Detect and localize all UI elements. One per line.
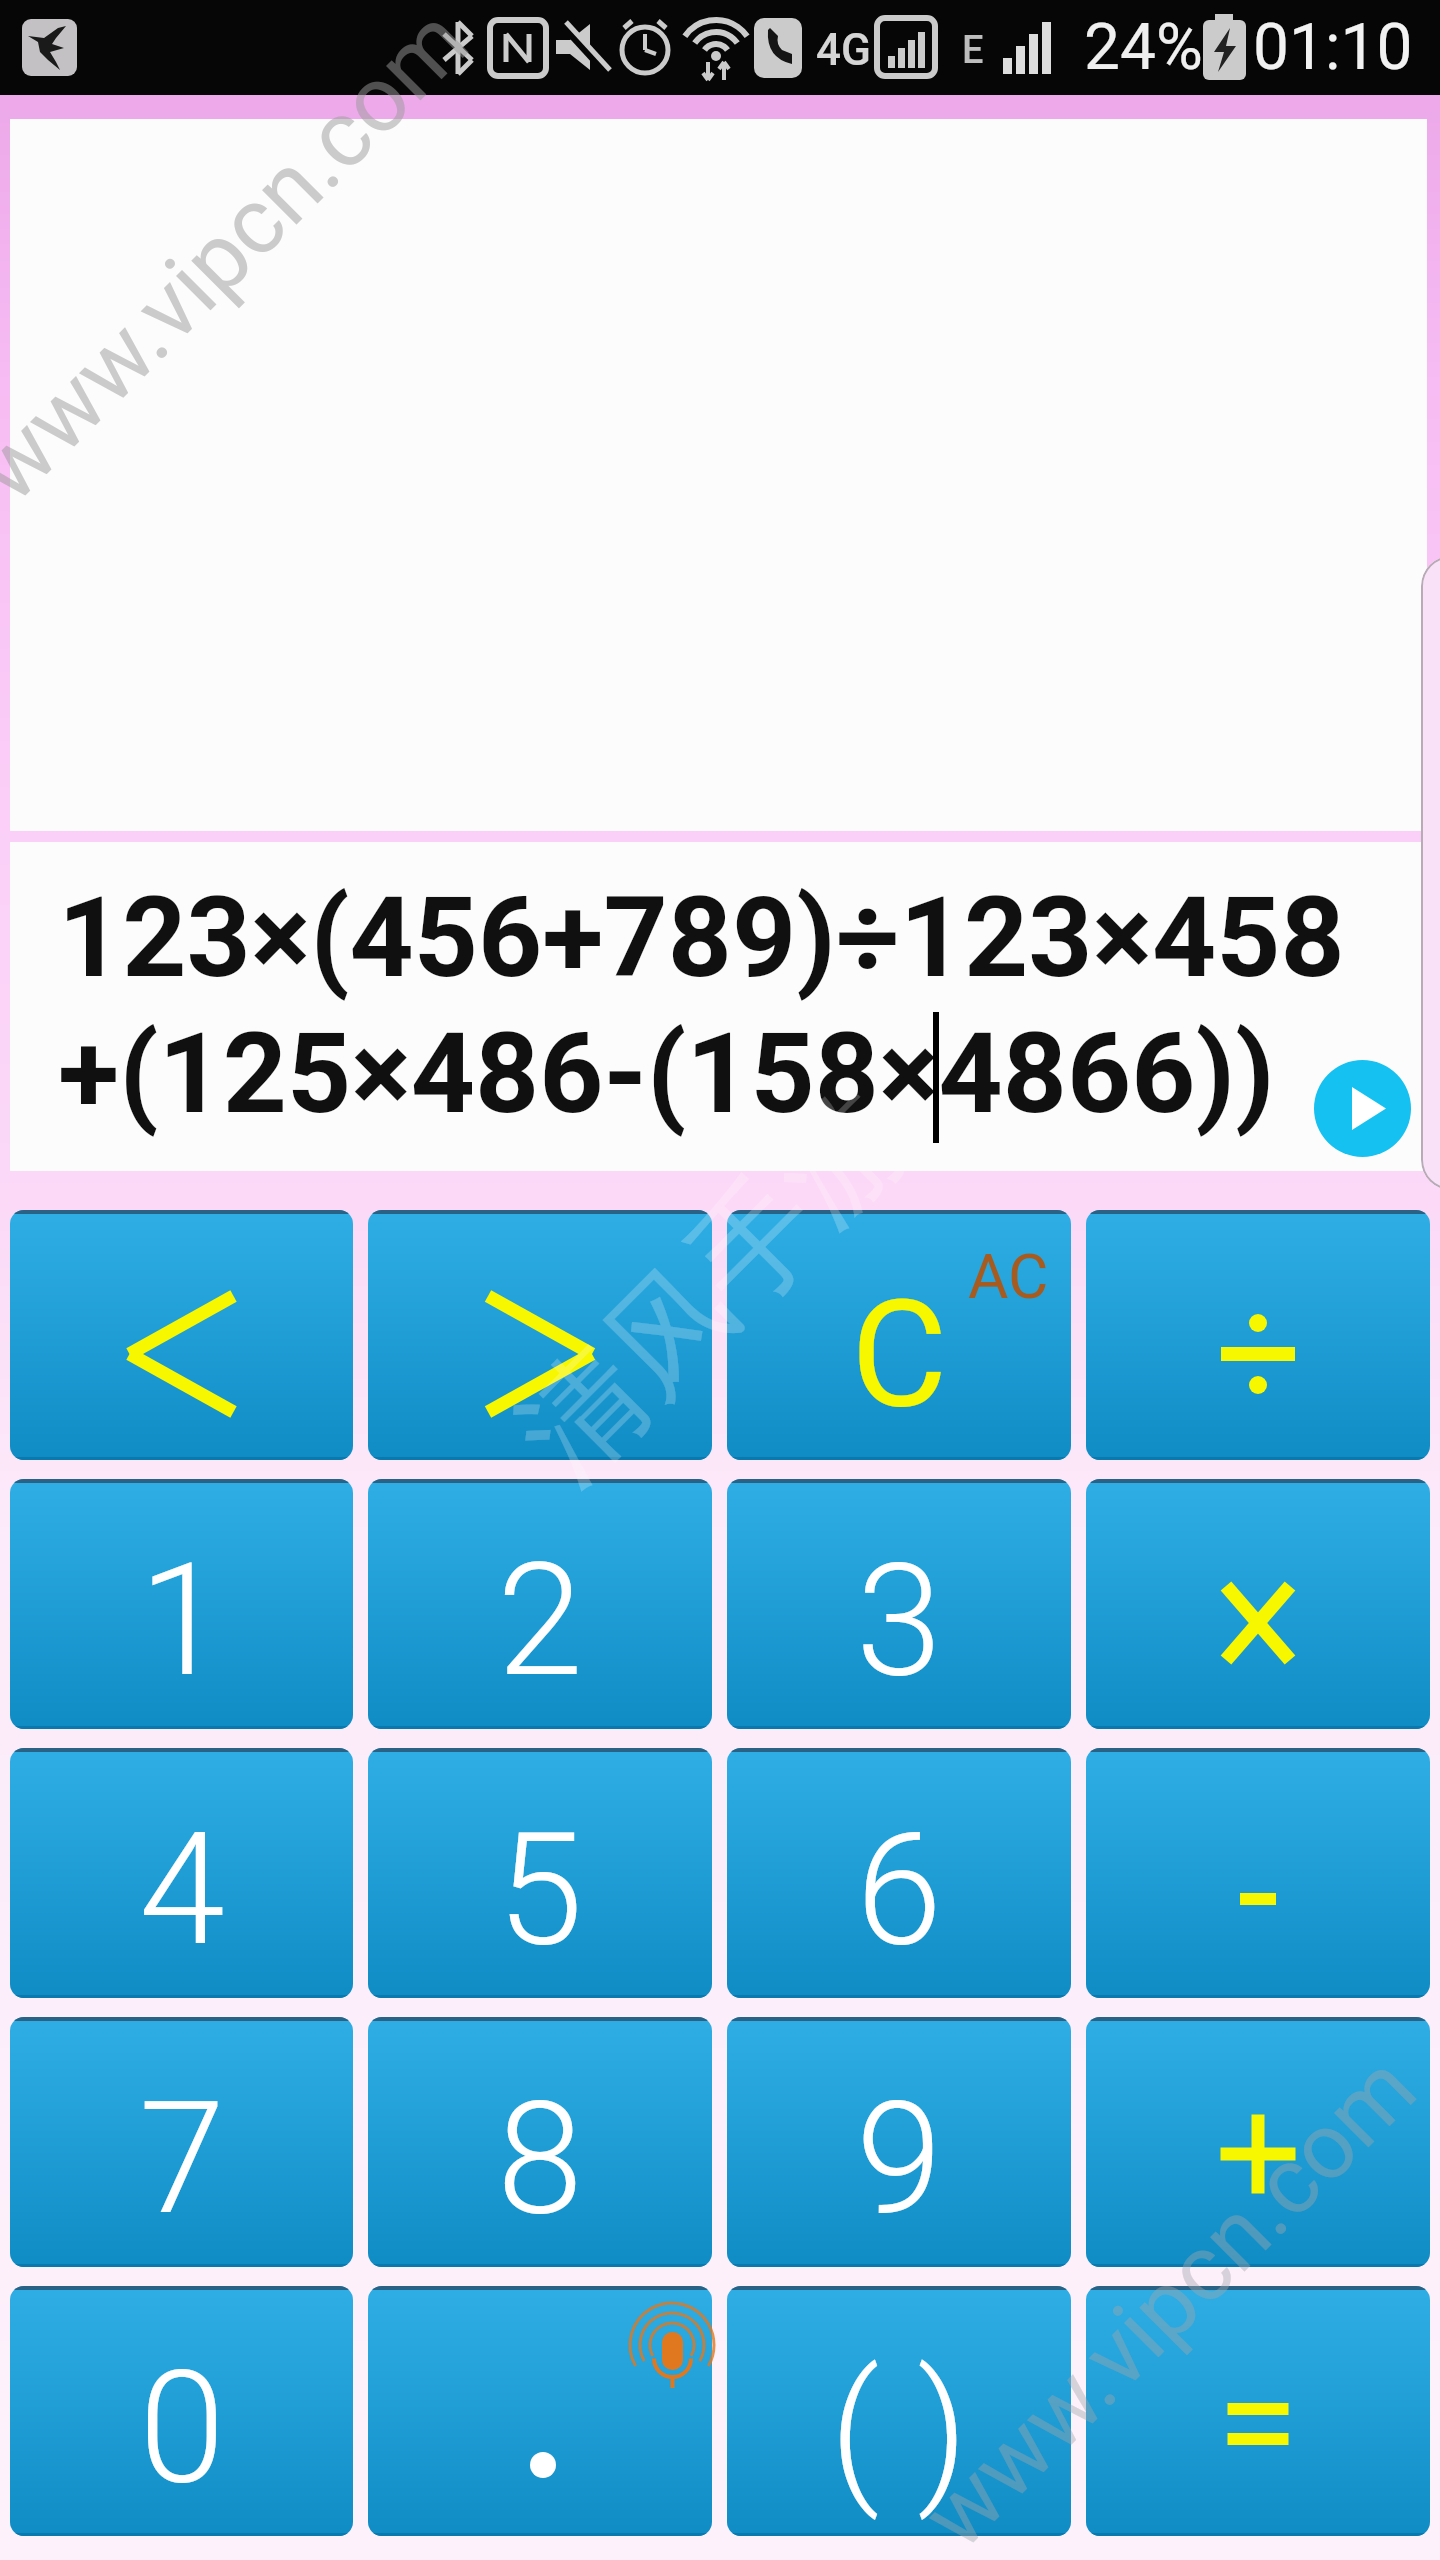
button[interactable]: 9	[727, 2017, 1071, 2267]
staticText: 3	[856, 1530, 942, 1712]
button[interactable]	[1086, 1748, 1430, 1998]
staticText: www.vipcn.com	[0, 0, 490, 523]
button[interactable]	[1086, 2017, 1430, 2267]
staticText: 24%	[1084, 10, 1203, 85]
button[interactable]: ( )	[727, 2286, 1071, 2536]
staticText: 4	[139, 1799, 225, 1981]
button[interactable]	[10, 1210, 353, 1460]
staticText: 8	[497, 2068, 583, 2250]
staticText: 123×(456+789)÷123×458 +(125×486-(158×486…	[58, 872, 1345, 1139]
staticText: E	[962, 28, 984, 73]
button[interactable]	[1086, 1210, 1430, 1460]
staticText: 9	[856, 2068, 942, 2250]
button[interactable]: 8	[368, 2017, 712, 2267]
staticText: 4G	[816, 24, 871, 76]
button[interactable]	[368, 1210, 712, 1460]
button[interactable]	[1086, 1479, 1430, 1729]
button[interactable]: 6	[727, 1748, 1071, 1998]
staticText: 01:10	[1253, 10, 1413, 85]
button[interactable]: C	[727, 1210, 1071, 1460]
staticText: 0	[139, 2337, 225, 2519]
staticText: ( )	[830, 2340, 968, 2522]
button[interactable]: 4	[10, 1748, 353, 1998]
button[interactable]	[1086, 2286, 1430, 2536]
staticText: 7	[139, 2068, 225, 2250]
staticText: C	[851, 1269, 948, 1442]
button[interactable]: 2	[368, 1479, 712, 1729]
staticText: 5	[497, 1799, 583, 1981]
staticText: 1	[139, 1530, 225, 1712]
staticText: www.vipcn.com	[902, 2034, 1438, 2560]
staticText: 6	[856, 1799, 942, 1981]
button[interactable]	[1314, 1060, 1411, 1157]
button[interactable]: 5	[368, 1748, 712, 1998]
button[interactable]	[368, 2286, 712, 2536]
button[interactable]: 1	[10, 1479, 353, 1729]
button[interactable]: 7	[10, 2017, 353, 2267]
staticText: AC	[968, 1240, 1049, 1313]
button[interactable]: 3	[727, 1479, 1071, 1729]
staticText: 清风手游	[487, 1060, 941, 1514]
staticText: 2	[497, 1530, 583, 1712]
button[interactable]: 0	[10, 2286, 353, 2536]
